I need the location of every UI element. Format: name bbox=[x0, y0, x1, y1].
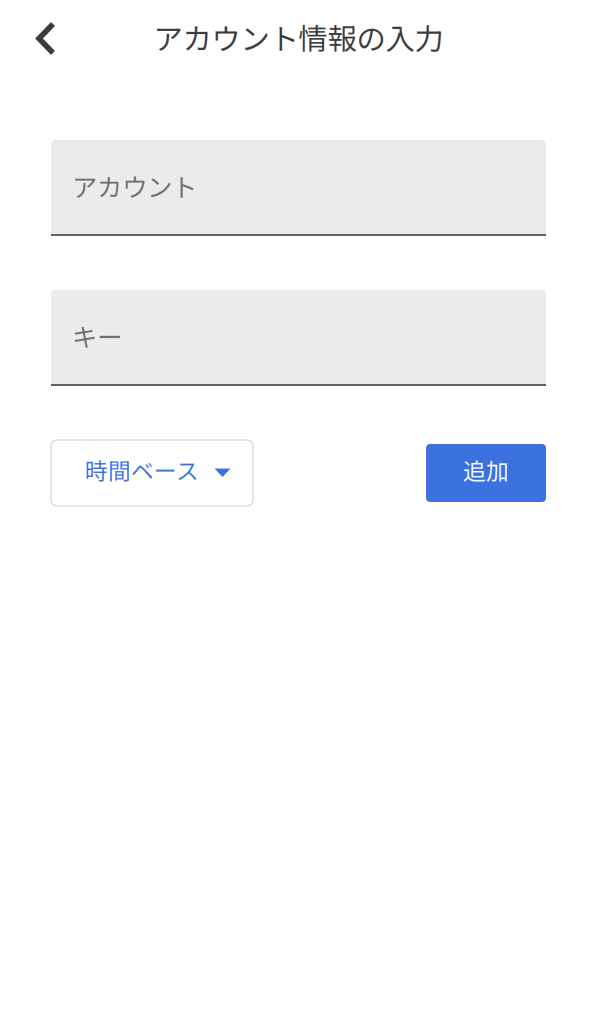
staticText: 時間ベース bbox=[85, 453, 199, 486]
staticText: 追加 bbox=[463, 453, 509, 486]
button[interactable]: 追加 bbox=[426, 444, 546, 502]
staticText: アカウント bbox=[72, 167, 197, 204]
staticText: アカウント情報の入力 bbox=[153, 16, 443, 58]
button[interactable]: Back bbox=[0, 0, 74, 74]
staticText: キー bbox=[72, 317, 122, 354]
button[interactable]: 時間ベース bbox=[51, 440, 253, 506]
